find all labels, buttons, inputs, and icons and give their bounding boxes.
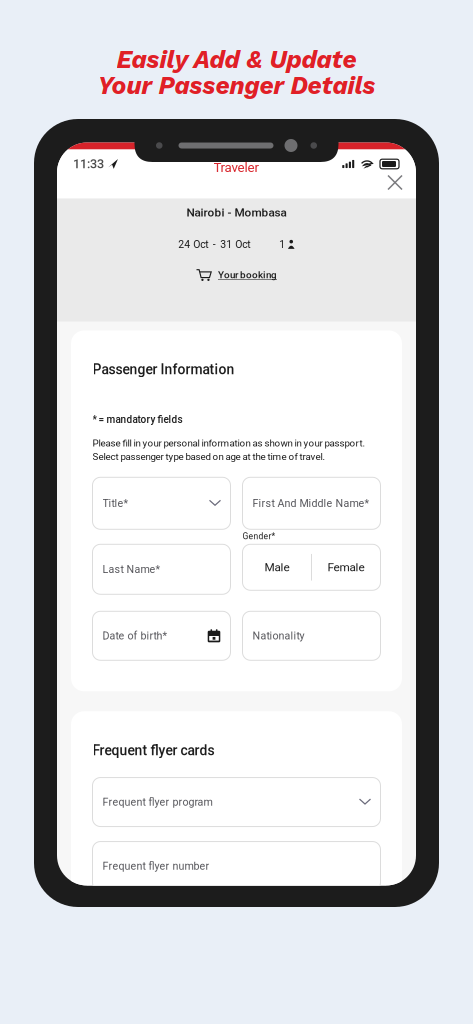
staticText: Frequent flyer program [102,796,212,808]
button[interactable]: Frequent flyer program [92,777,380,826]
button[interactable]: Last Name* [92,544,230,594]
button[interactable]: Title* [92,477,230,529]
button[interactable]: Nationality [242,611,380,660]
staticText: Passenger Information [92,361,234,378]
button[interactable]: Your booking [196,266,277,283]
staticText: Gender* [242,531,275,541]
staticText: Frequent flyer number [102,860,209,872]
staticText: Nairobi - Mombasa [186,205,286,219]
button[interactable]: First And Middle Name* [242,477,380,529]
staticText: Last Name* [102,563,160,575]
button[interactable]: Male [242,544,311,590]
button[interactable]: Date of birth* [92,611,230,660]
staticText: Please fill in your personal information… [92,437,365,449]
staticText: Female [327,560,364,574]
staticText: Date of birth* [102,629,167,642]
button[interactable]: Female [311,544,380,590]
staticText: - [213,238,216,250]
staticText: 1 [279,238,285,250]
staticText: Your booking [218,269,277,281]
staticText: Traveler [213,160,259,175]
staticText: Title* [102,497,128,509]
staticText: Male [264,560,289,574]
staticText: Select passenger type based on age at th… [92,451,325,462]
staticText: Nationality [252,629,304,642]
staticText: First And Middle Name* [252,497,369,509]
button[interactable]: Frequent flyer number [92,841,380,890]
staticText: 31 Oct [220,238,250,250]
button[interactable]: Close [385,172,405,192]
staticText: * = mandatory fields [92,414,182,425]
staticText: 11:33 [73,157,104,171]
staticText: Frequent flyer cards [92,742,214,759]
staticText: 24 Oct [178,238,208,250]
staticText: Your Passenger Details [97,71,375,100]
staticText: Easily Add & Update [116,45,356,74]
